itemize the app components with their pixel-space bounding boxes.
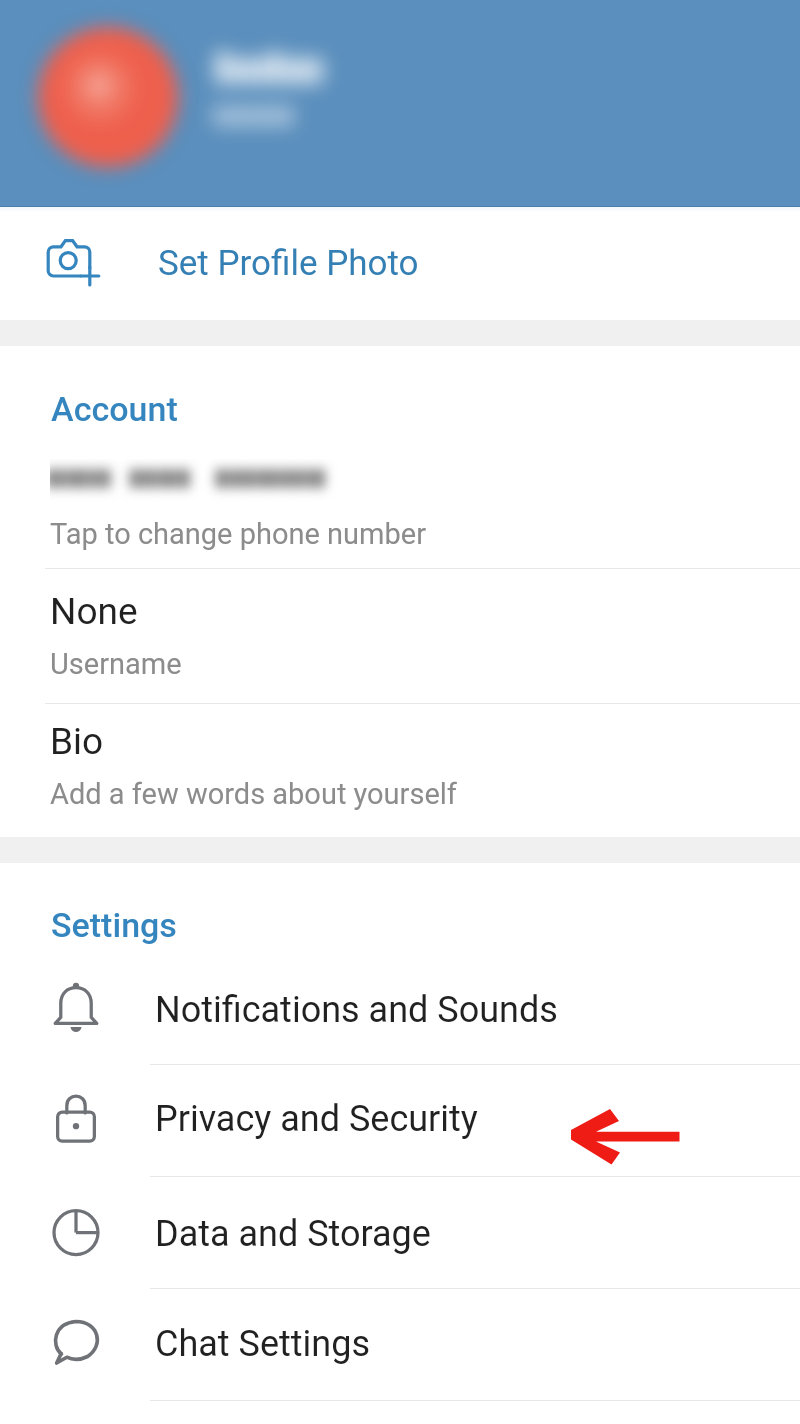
button[interactable]: Set profile photo: [0, 207, 800, 320]
staticText: Data and Storage: [155, 1213, 431, 1255]
staticText: Username: [50, 647, 182, 681]
staticText: Bio: [50, 720, 104, 763]
staticText: Privacy and Security: [155, 1098, 478, 1140]
other: Phone number (hidden): [50, 459, 370, 503]
button[interactable]: Privacy and Security: [0, 1061, 800, 1173]
staticText: Chat Settings: [155, 1323, 370, 1365]
other: Set profile photo: [44, 235, 100, 291]
staticText: Set Profile Photo: [158, 243, 419, 284]
button[interactable]: Chat Settings: [0, 1285, 800, 1399]
button[interactable]: Phone number (hidden): [0, 440, 800, 570]
staticText: Tap to change phone number: [50, 517, 426, 551]
staticText: None: [50, 590, 138, 633]
button[interactable]: None: [0, 571, 800, 699]
button[interactable]: Profile photo: [0, 0, 800, 207]
staticText: Add a few words about yourself: [50, 777, 457, 811]
button[interactable]: Notifications and Sounds: [0, 951, 800, 1064]
staticText: Account: [51, 389, 178, 429]
other: Profile photo: [0, 0, 800, 207]
button[interactable]: Bio: [0, 700, 800, 830]
staticText: Notifications and Sounds: [155, 989, 558, 1031]
button[interactable]: Data and Storage: [0, 1179, 800, 1285]
staticText: Settings: [51, 905, 177, 945]
